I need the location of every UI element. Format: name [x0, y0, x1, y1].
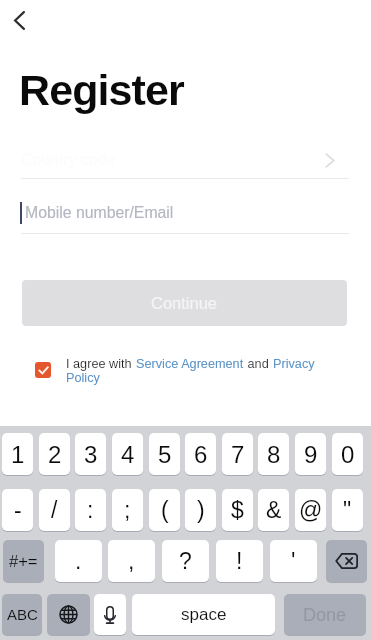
button[interactable]: Symbols: [3, 540, 44, 582]
button[interactable]: Backspace: [326, 540, 367, 582]
staticText: &: [266, 497, 282, 523]
button[interactable]: ): [185, 489, 216, 531]
button[interactable]: 6: [185, 433, 216, 475]
staticText: ,: [128, 548, 135, 574]
staticText: and: [244, 357, 273, 371]
button[interactable]: Service Agreement: [136, 357, 244, 371]
button[interactable]: 0: [332, 433, 363, 475]
staticText: Mobile number/Email: [25, 204, 174, 222]
button[interactable]: ": [332, 489, 363, 531]
button[interactable]: Dictate: [94, 594, 126, 635]
staticText: 3: [84, 441, 98, 468]
button[interactable]: 5: [149, 433, 180, 475]
staticText: :: [87, 497, 94, 523]
button[interactable]: space: [132, 594, 275, 635]
button[interactable]: 9: [295, 433, 326, 475]
staticText: /: [51, 497, 58, 523]
staticText: .: [75, 548, 82, 574]
button[interactable]: Change keyboard: [47, 594, 90, 635]
button[interactable]: Policy: [66, 371, 100, 385]
button[interactable]: Letters keyboard: [2, 594, 42, 635]
staticText: 1: [11, 441, 25, 468]
button[interactable]: ;: [112, 489, 143, 531]
button[interactable]: /: [39, 489, 70, 531]
staticText: ': [291, 548, 296, 574]
staticText: ): [197, 497, 205, 523]
staticText: $: [231, 497, 244, 523]
button[interactable]: &: [258, 489, 289, 531]
staticText: 6: [194, 441, 208, 468]
staticText: 2: [48, 441, 62, 468]
button[interactable]: 7: [222, 433, 253, 475]
staticText: (: [161, 497, 169, 523]
button[interactable]: Done: [284, 594, 366, 635]
button[interactable]: !: [216, 540, 263, 582]
staticText: ?: [179, 548, 192, 574]
button[interactable]: 4: [112, 433, 143, 475]
staticText: 5: [158, 441, 172, 468]
staticText: 4: [121, 441, 135, 468]
button[interactable]: 2: [39, 433, 70, 475]
button[interactable]: ': [270, 540, 317, 582]
staticText: ;: [124, 497, 131, 523]
staticText: Done: [303, 605, 347, 625]
staticText: ": [343, 497, 352, 523]
button[interactable]: .: [55, 540, 102, 582]
button[interactable]: :: [75, 489, 106, 531]
staticText: Register: [19, 66, 184, 114]
staticText: Continue: [151, 294, 218, 312]
staticText: 7: [231, 441, 245, 468]
button[interactable]: Back: [3, 4, 36, 37]
button[interactable]: (: [149, 489, 180, 531]
button[interactable]: ?: [162, 540, 209, 582]
button[interactable]: -: [2, 489, 33, 531]
button[interactable]: $: [222, 489, 253, 531]
staticText: #+=: [9, 552, 38, 570]
button[interactable]: @: [295, 489, 326, 531]
staticText: 8: [267, 441, 281, 468]
staticText: !: [236, 548, 243, 574]
staticText: -: [14, 497, 22, 523]
staticText: @: [299, 497, 323, 523]
button[interactable]: 3: [75, 433, 106, 475]
button[interactable]: 1: [2, 433, 33, 475]
staticText: space: [181, 605, 227, 624]
button[interactable]: Privacy: [273, 357, 315, 371]
staticText: I agree with: [66, 357, 136, 371]
staticText: ABC: [7, 606, 38, 623]
button[interactable]: Agree to terms: [35, 362, 51, 378]
button[interactable]: ,: [108, 540, 155, 582]
staticText: 0: [341, 441, 355, 468]
staticText: 9: [304, 441, 318, 468]
button[interactable]: 8: [258, 433, 289, 475]
